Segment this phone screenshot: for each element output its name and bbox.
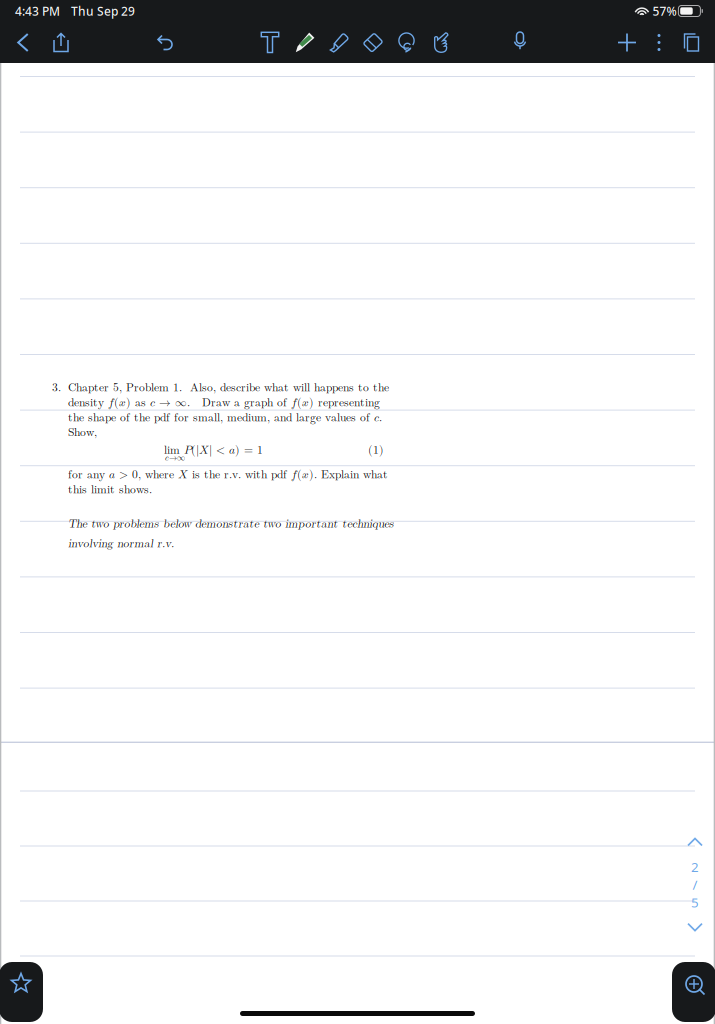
staticText: Thu Sep 29 xyxy=(71,3,135,19)
staticText: for any 𝑎 > 0, where 𝑋 is the r.v. with … xyxy=(68,469,388,481)
staticText: Chapter 5, Problem 1. Also, describe wha… xyxy=(68,382,389,394)
button[interactable]: Pages xyxy=(675,22,707,63)
button[interactable]: Add xyxy=(611,22,643,63)
staticText: density 𝑓(𝑥) as 𝑐 → ∞. Draw a graph of 𝑓… xyxy=(68,397,380,408)
staticText: 3. xyxy=(52,382,61,394)
button[interactable]: Pen xyxy=(289,22,321,63)
button[interactable]: Back xyxy=(7,22,39,63)
staticText: (1) xyxy=(368,444,384,456)
button[interactable]: Hand xyxy=(425,22,457,63)
staticText: involving normal r.v. xyxy=(68,534,174,551)
staticText: 2 xyxy=(691,858,699,876)
staticText: 5 xyxy=(691,893,699,911)
staticText: 4:43 PM xyxy=(15,3,60,19)
staticText: / xyxy=(692,876,697,893)
staticText: 𝑐→∞ xyxy=(165,454,185,462)
staticText: 57% xyxy=(652,3,676,19)
button[interactable]: Lasso xyxy=(391,22,423,63)
button[interactable]: Highlighter xyxy=(323,22,355,63)
button[interactable]: More xyxy=(646,22,672,63)
button[interactable]: Bookmark xyxy=(0,962,43,1022)
button[interactable]: Record audio xyxy=(504,22,536,63)
button[interactable]: Share xyxy=(45,22,77,63)
button[interactable]: Next page xyxy=(680,917,710,937)
button[interactable]: Zoom in xyxy=(672,962,715,1022)
staticText: Show, xyxy=(68,427,97,438)
staticText: lim 𝑃(|𝑋| < 𝑎) = 1 xyxy=(164,444,263,456)
button[interactable]: Text tool xyxy=(254,22,286,63)
button[interactable]: Undo xyxy=(149,22,181,63)
staticText: The two problems below demonstrate two i… xyxy=(68,514,394,531)
staticText: the shape of the pdf for small, medium, … xyxy=(68,412,382,423)
button[interactable]: Previous page xyxy=(680,832,710,852)
staticText: this limit shows. xyxy=(68,484,152,495)
button[interactable]: Eraser xyxy=(357,22,389,63)
